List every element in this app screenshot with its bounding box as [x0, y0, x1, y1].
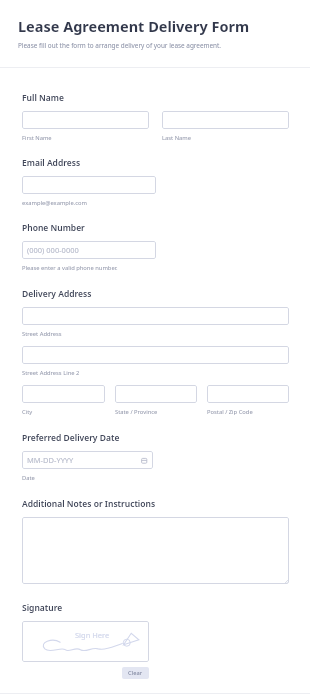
button[interactable]: Clear: [122, 667, 149, 679]
button[interactable]: [207, 385, 289, 403]
staticText: example@example.com: [22, 199, 87, 207]
button[interactable]: [22, 517, 289, 584]
staticText: (000) 000-0000: [27, 245, 79, 255]
button[interactable]: Signature pad, sign here: [22, 621, 149, 662]
staticText: Street Address: [22, 330, 62, 338]
button[interactable]: (000) 000-0000: [22, 241, 156, 259]
button[interactable]: [162, 111, 289, 129]
staticText: Please fill out the form to arrange deli…: [18, 41, 222, 50]
staticText: First Name: [22, 134, 52, 142]
staticText: Phone Number: [22, 222, 85, 234]
staticText: Signature: [22, 602, 63, 614]
button[interactable]: [22, 176, 156, 194]
staticText: Postal / Zip Code: [207, 408, 253, 416]
button[interactable]: [22, 346, 289, 364]
staticText: Preferred Delivery Date: [22, 432, 120, 444]
staticText: City: [22, 408, 33, 416]
staticText: Additional Notes or Instructions: [22, 498, 156, 510]
staticText: State / Province: [115, 408, 158, 416]
staticText: Clear: [128, 669, 143, 677]
staticText: Lease Agreement Delivery Form: [18, 16, 250, 36]
staticText: Street Address Line 2: [22, 369, 80, 377]
staticText: Sign Here: [75, 630, 110, 640]
button[interactable]: MM-DD-YYYY: [22, 451, 153, 469]
staticText: Email Address: [22, 157, 81, 169]
staticText: Full Name: [22, 92, 64, 104]
button[interactable]: [22, 385, 105, 403]
staticText: Please enter a valid phone number.: [22, 264, 118, 272]
staticText: MM-DD-YYYY: [27, 455, 74, 465]
staticText: Date: [22, 474, 35, 482]
staticText: Delivery Address: [22, 288, 92, 300]
button[interactable]: [22, 307, 289, 325]
button[interactable]: [22, 111, 149, 129]
button[interactable]: [115, 385, 197, 403]
staticText: Last Name: [162, 134, 192, 142]
